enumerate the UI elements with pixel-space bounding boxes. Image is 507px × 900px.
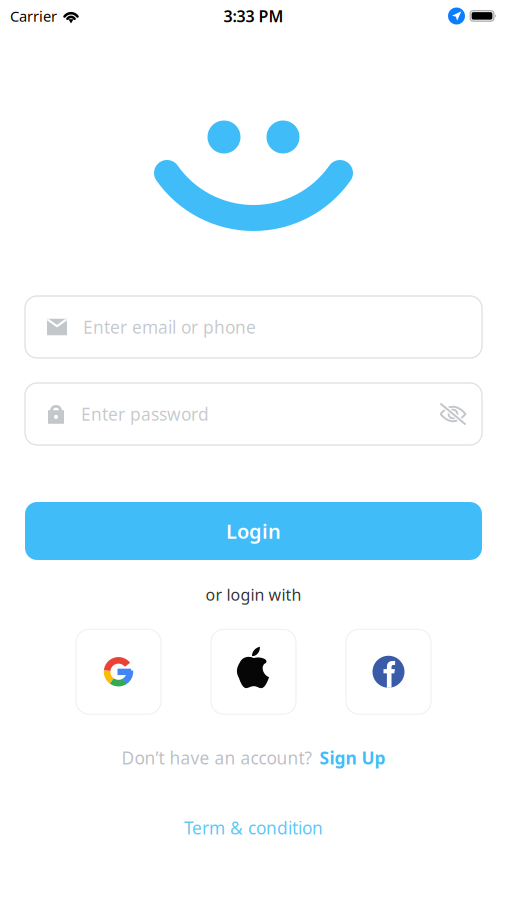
button[interactable]: Show password: [439, 403, 467, 425]
button[interactable]: Sign in with Google: [76, 629, 161, 714]
button[interactable]: Sign in with Facebook: [346, 629, 431, 714]
button[interactable]: Login: [25, 502, 482, 560]
button[interactable]: Term & condition: [184, 816, 323, 839]
staticText: Enter email or phone: [83, 315, 256, 338]
staticText: Login: [226, 518, 281, 544]
staticText: Don’t have an account?: [121, 746, 312, 769]
button[interactable]: Don’t have an account?: [121, 746, 385, 769]
staticText: Term & condition: [184, 816, 323, 839]
button[interactable]: Sign in with Apple: [211, 629, 296, 714]
staticText: 3:33 PM: [223, 5, 283, 27]
staticText: Carrier: [10, 6, 57, 26]
staticText: or login with: [205, 584, 301, 605]
staticText: Enter password: [81, 402, 209, 425]
staticText: Sign Up: [319, 746, 385, 769]
